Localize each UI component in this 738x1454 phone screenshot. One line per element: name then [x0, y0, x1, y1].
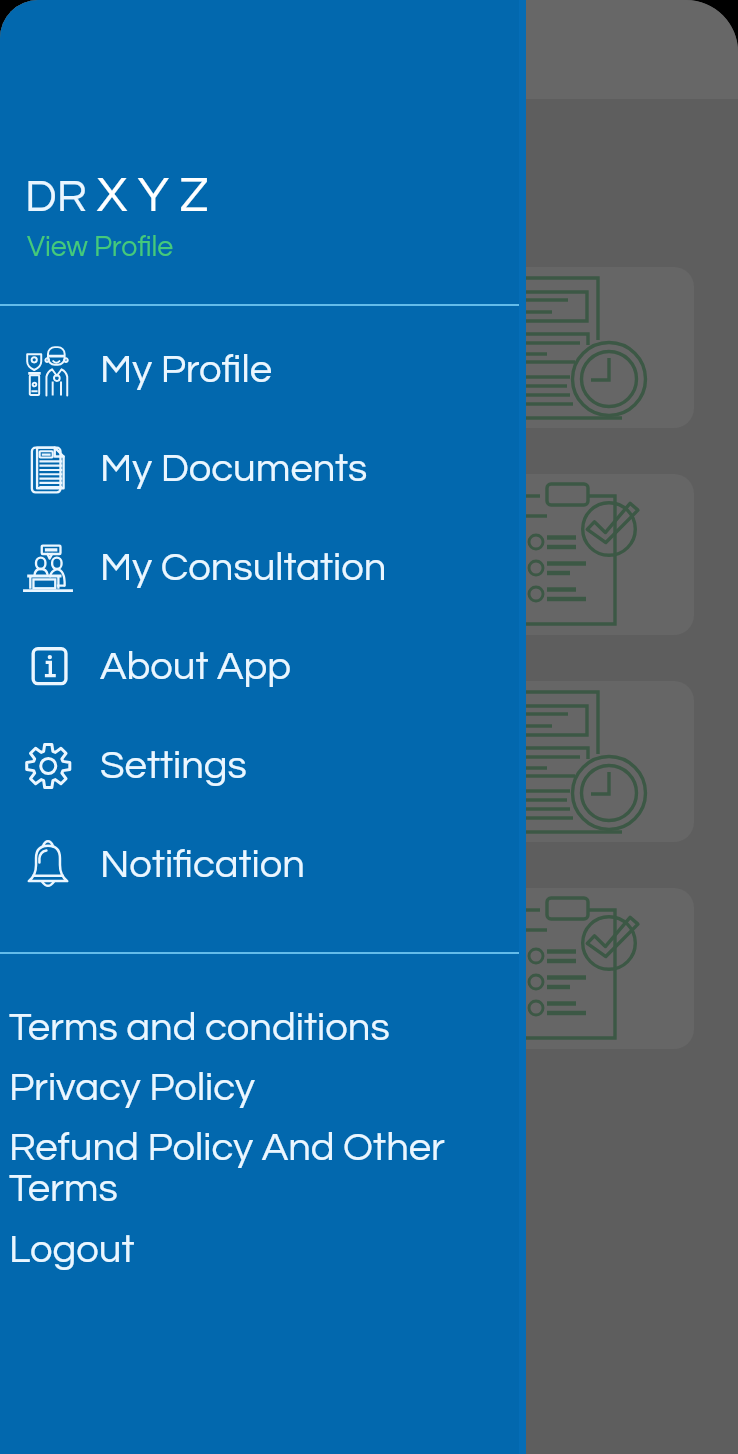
- button[interactable]: About App: [0, 617, 526, 716]
- staticText: XYZ: [97, 171, 220, 221]
- staticText: My Profile: [100, 349, 272, 390]
- staticText: About App: [100, 646, 292, 687]
- button[interactable]: Settings: [0, 716, 526, 815]
- button[interactable]: My Profile: [0, 320, 526, 419]
- button[interactable]: Close navigation drawer: [526, 0, 738, 1454]
- staticText: Notification: [100, 844, 305, 885]
- staticText: View Profile: [27, 233, 174, 262]
- button[interactable]: Refund Policy And Other Terms: [9, 1127, 486, 1210]
- staticText: Terms and conditions: [9, 1007, 390, 1048]
- button[interactable]: Notification: [0, 815, 526, 914]
- staticText: My Documents: [100, 448, 368, 489]
- button[interactable]: Logout: [9, 1229, 486, 1270]
- staticText: Refund Policy And Other Terms: [9, 1127, 486, 1210]
- staticText: Logout: [9, 1229, 135, 1270]
- staticText: Settings: [100, 745, 247, 786]
- button[interactable]: Privacy Policy: [9, 1067, 486, 1108]
- button[interactable]: My Documents: [0, 419, 526, 518]
- staticText: DR: [25, 174, 97, 220]
- button[interactable]: [40, 474, 694, 635]
- button[interactable]: [40, 888, 694, 1049]
- staticText: My Consultation: [100, 547, 387, 588]
- button[interactable]: View Profile: [27, 233, 174, 262]
- staticText: Privacy Policy: [9, 1067, 255, 1108]
- button[interactable]: My Consultation: [0, 518, 526, 617]
- button[interactable]: [40, 267, 694, 428]
- button[interactable]: Terms and conditions: [9, 1007, 486, 1048]
- button[interactable]: [40, 681, 694, 842]
